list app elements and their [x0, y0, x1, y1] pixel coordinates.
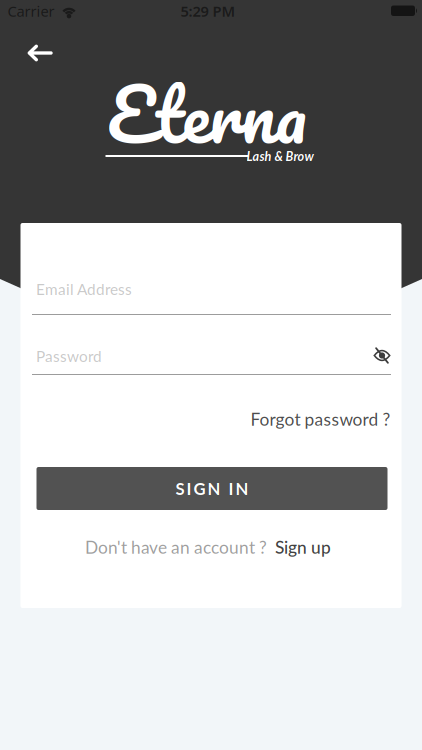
- staticText: Forgot password ?: [250, 409, 390, 429]
- button[interactable]: [27, 45, 52, 60]
- button[interactable]: Email Address: [32, 278, 391, 315]
- staticText: Email Address: [36, 280, 132, 298]
- staticText: Password: [36, 347, 102, 365]
- staticText: Carrier: [7, 1, 54, 21]
- button[interactable]: Don't have an account ?: [85, 537, 331, 557]
- button[interactable]: Password: [32, 338, 391, 375]
- staticText: Eterna: [107, 53, 307, 175]
- staticText: 5:29 PM: [180, 1, 235, 21]
- staticText: SIGN IN: [175, 478, 248, 498]
- button[interactable]: Forgot password ?: [31, 407, 390, 431]
- staticText: Sign up: [275, 537, 331, 557]
- staticText: Don't have an account ?: [85, 537, 267, 557]
- staticText: Lash & Brow: [246, 148, 313, 164]
- button[interactable]: SIGN IN: [36, 467, 387, 510]
